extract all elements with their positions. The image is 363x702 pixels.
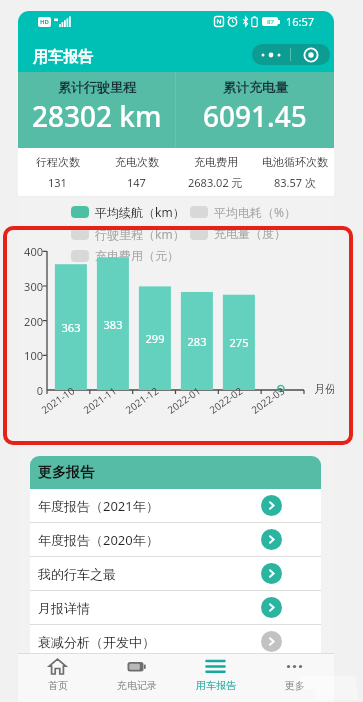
button[interactable]: [252, 44, 330, 65]
button[interactable]: 首页: [18, 654, 97, 702]
staticText: 月份: [314, 382, 334, 396]
staticText: 充电记录: [117, 679, 157, 692]
button[interactable]: 充电记录: [97, 654, 176, 702]
staticText: 383: [97, 317, 129, 332]
staticText: 充电费用（元）: [95, 248, 179, 263]
staticText: 电池循环次数: [262, 155, 328, 169]
button[interactable]: 月报详情: [30, 591, 321, 624]
staticText: 年度报告（2020年）: [38, 531, 159, 549]
staticText: 2021-12: [122, 383, 162, 417]
staticText: 行驶里程（km）: [95, 226, 185, 242]
staticText: 6091.45: [203, 97, 307, 135]
staticText: HD: [40, 18, 49, 26]
staticText: 用车报告: [33, 48, 93, 67]
staticText: 行程次数: [36, 155, 80, 169]
staticText: 充电费用: [194, 155, 238, 169]
button[interactable]: 年度报告（2020年）: [30, 523, 321, 556]
staticText: 累计充电量: [223, 79, 288, 95]
staticText: 299: [139, 331, 171, 346]
staticText: 147: [127, 175, 146, 190]
staticText: 100: [18, 348, 43, 363]
staticText: 300: [18, 279, 43, 294]
staticText: 0: [18, 383, 43, 398]
staticText: 充电量（度）: [214, 226, 286, 241]
staticText: 衰减分析（开发中）: [38, 634, 155, 650]
staticText: 28302 km: [32, 97, 162, 135]
staticText: 283: [181, 334, 213, 349]
staticText: 平均电耗（%）: [214, 204, 296, 220]
staticText: 2022-03: [248, 383, 288, 417]
button[interactable]: 更多: [255, 654, 334, 702]
staticText: 275: [223, 335, 255, 350]
button[interactable]: 衰减分析（开发中）: [30, 625, 321, 658]
staticText: 累计行驶里程: [58, 79, 136, 95]
staticText: 2683.02 元: [188, 175, 243, 190]
staticText: 平均续航（km）: [95, 204, 185, 220]
staticText: 2022-01: [164, 383, 204, 417]
staticText: 200: [18, 314, 43, 329]
staticText: 更多: [285, 679, 305, 692]
staticText: 2021-11: [80, 383, 120, 417]
staticText: 首页: [48, 679, 68, 692]
staticText: 年度报告（2021年）: [38, 497, 159, 515]
staticText: 用车报告: [196, 679, 236, 692]
button[interactable]: 用车报告: [176, 654, 255, 702]
staticText: 400: [18, 244, 43, 259]
staticText: 131: [48, 175, 67, 190]
staticText: 2022-02: [206, 383, 246, 417]
button[interactable]: 年度报告（2021年）: [30, 489, 321, 522]
staticText: 月报详情: [38, 600, 90, 616]
button[interactable]: 我的行车之最: [30, 557, 321, 590]
staticText: 363: [55, 320, 87, 335]
staticText: 16:57: [286, 14, 315, 29]
staticText: 我的行车之最: [38, 566, 116, 582]
staticText: 83.57 次: [274, 175, 316, 190]
staticText: 2021-10: [38, 383, 78, 417]
staticText: 87: [267, 18, 274, 26]
staticText: 充电次数: [115, 155, 159, 169]
staticText: 更多报告: [38, 464, 94, 482]
